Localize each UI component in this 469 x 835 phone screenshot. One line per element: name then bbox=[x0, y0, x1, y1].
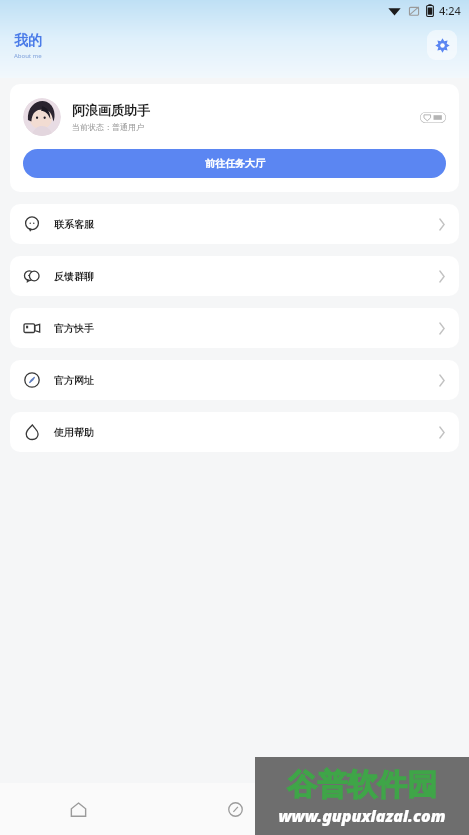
staticText: 联系客服 bbox=[54, 218, 94, 231]
button[interactable]: 阿浪画质助手 bbox=[23, 98, 446, 136]
button[interactable]: 官方快手 bbox=[10, 308, 459, 348]
staticText: About me bbox=[14, 52, 42, 60]
button[interactable]: 前往任务大厅 bbox=[23, 149, 446, 178]
button[interactable]: Home bbox=[0, 783, 157, 835]
staticText: www.gupuxlazal.com bbox=[278, 805, 446, 827]
button[interactable]: 反馈群聊 bbox=[10, 256, 459, 296]
button[interactable]: 联系客服 bbox=[10, 204, 459, 244]
button[interactable]: Settings bbox=[427, 30, 457, 60]
staticText: 前往任务大厅 bbox=[205, 157, 265, 170]
staticText: 使用帮助 bbox=[54, 426, 94, 439]
staticText: 谷普软件园 bbox=[287, 766, 437, 804]
staticText: 4:24 bbox=[439, 3, 461, 18]
staticText: 阿浪画质助手 bbox=[72, 102, 150, 118]
staticText: 官方快手 bbox=[54, 322, 94, 335]
staticText: 我的 bbox=[14, 32, 42, 50]
staticText: 官方网址 bbox=[54, 374, 94, 387]
button[interactable]: Discover bbox=[157, 783, 313, 835]
button[interactable]: 使用帮助 bbox=[10, 412, 459, 452]
staticText: 反馈群聊 bbox=[54, 270, 94, 283]
button[interactable]: 官方网址 bbox=[10, 360, 459, 400]
staticText: 当前状态：普通用户 bbox=[72, 122, 144, 132]
